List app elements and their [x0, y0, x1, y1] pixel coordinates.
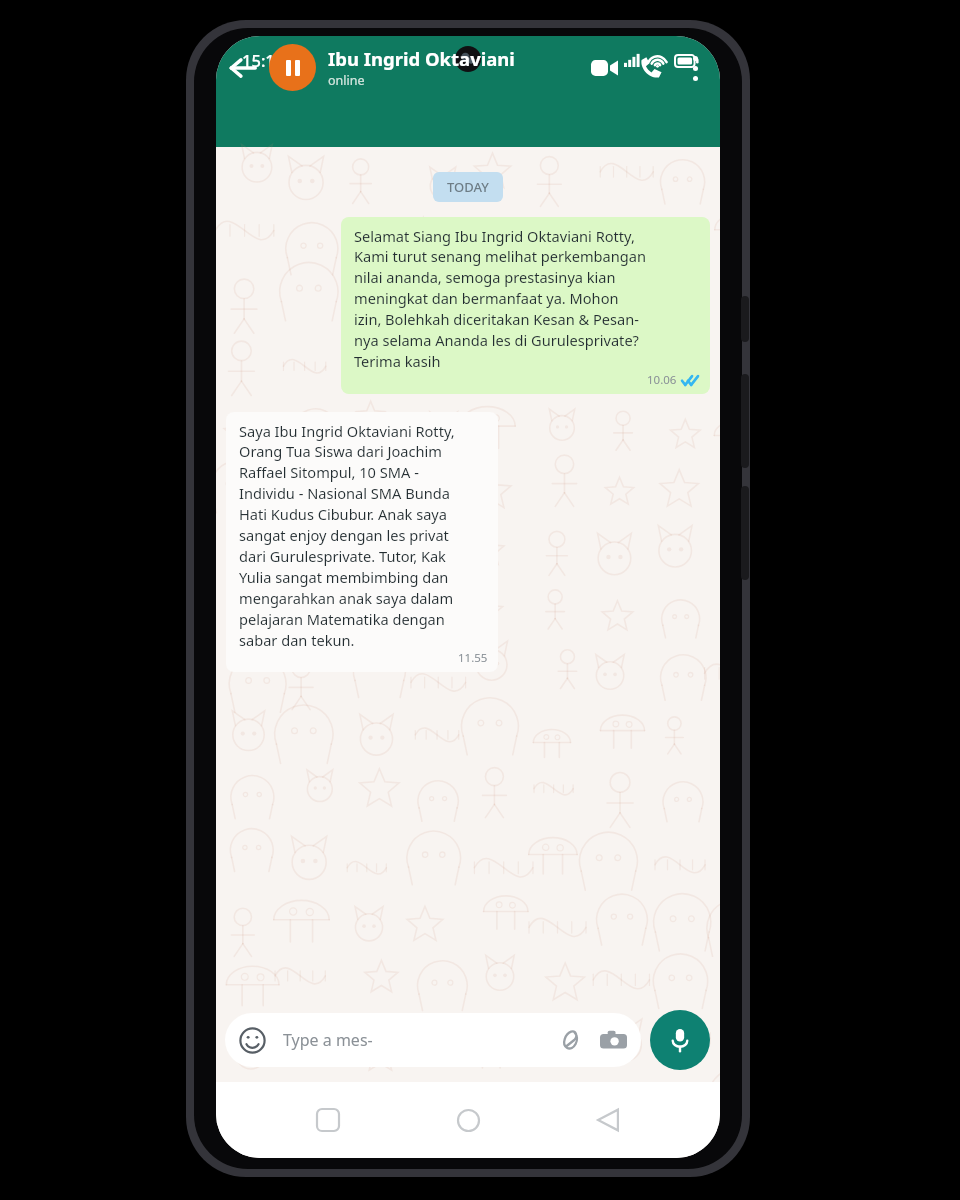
staticText: TODAY — [447, 178, 489, 196]
button[interactable]: Recents — [300, 1092, 356, 1148]
button[interactable]: More options — [674, 41, 716, 95]
staticText: Ibu Ingrid Oktaviani — [328, 46, 515, 71]
staticText: online — [328, 72, 365, 89]
button[interactable]: Ibu Ingrid Oktaviani — [328, 46, 580, 89]
staticText: Selamat Siang Ibu Ingrid Oktaviani Rotty… — [354, 226, 646, 371]
button[interactable]: Camera — [600, 1027, 627, 1054]
button[interactable]: Profile photo — [269, 44, 316, 91]
button[interactable]: Saya Ibu Ingrid Oktaviani Rotty, Orang T… — [226, 412, 498, 672]
staticText: 11.55 — [458, 650, 488, 666]
button[interactable]: Video call — [580, 41, 628, 95]
button[interactable]: Attach — [556, 1027, 582, 1053]
button[interactable]: Emoji — [239, 1027, 266, 1054]
button[interactable]: Voice message — [650, 1010, 710, 1070]
button[interactable]: Home — [440, 1092, 496, 1148]
button[interactable]: Back — [220, 41, 266, 95]
button[interactable]: Voice call — [628, 41, 674, 95]
button[interactable]: Emoji — [225, 1013, 641, 1067]
staticText: 10.06 — [647, 372, 677, 388]
staticText: Saya Ibu Ingrid Oktaviani Rotty, Orang T… — [239, 421, 455, 650]
staticText: 15:16 — [242, 49, 285, 71]
button[interactable]: TODAY — [433, 172, 503, 202]
button[interactable]: Selamat Siang Ibu Ingrid Oktaviani Rotty… — [341, 217, 710, 394]
button[interactable]: Back — [580, 1092, 636, 1148]
staticText: Type a mes- — [283, 1029, 373, 1051]
